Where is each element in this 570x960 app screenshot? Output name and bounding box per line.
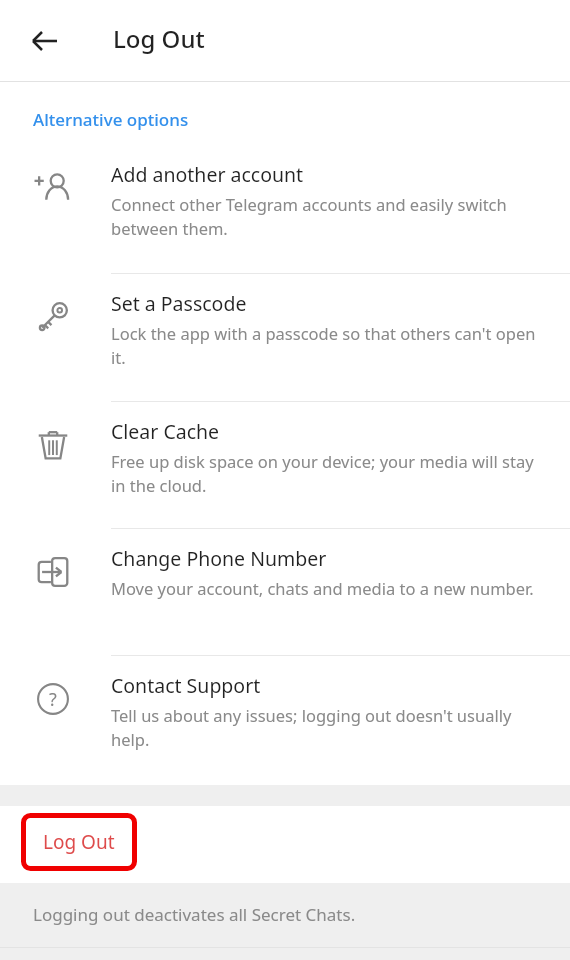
staticText: Tell us about any issues; logging out do… (111, 704, 544, 751)
button[interactable]: Add another account (0, 145, 570, 273)
staticText: Change Phone Number (111, 545, 327, 572)
staticText: Logging out deactivates all Secret Chats… (33, 903, 356, 926)
staticText: Lock the app with a passcode so that oth… (111, 322, 544, 369)
staticText: Add another account (111, 161, 304, 188)
staticText: Free up disk space on your device; your … (111, 450, 544, 497)
staticText: Alternative options (33, 108, 189, 131)
button[interactable]: Back (12, 18, 78, 64)
staticText: Log Out (43, 829, 115, 855)
staticText: Connect other Telegram accounts and easi… (111, 193, 544, 240)
button[interactable]: ? (0, 656, 570, 785)
button[interactable]: Clear Cache (0, 402, 570, 528)
staticText: Move your account, chats and media to a … (111, 577, 534, 599)
staticText: Set a Passcode (111, 290, 247, 317)
button[interactable]: Log Out (0, 806, 570, 883)
staticText: ? (49, 687, 57, 712)
staticText: Clear Cache (111, 418, 220, 445)
button[interactable]: Change Phone Number (0, 529, 570, 655)
staticText: Log Out (113, 22, 205, 55)
button[interactable]: Set a Passcode (0, 274, 570, 401)
staticText: Contact Support (111, 672, 261, 699)
